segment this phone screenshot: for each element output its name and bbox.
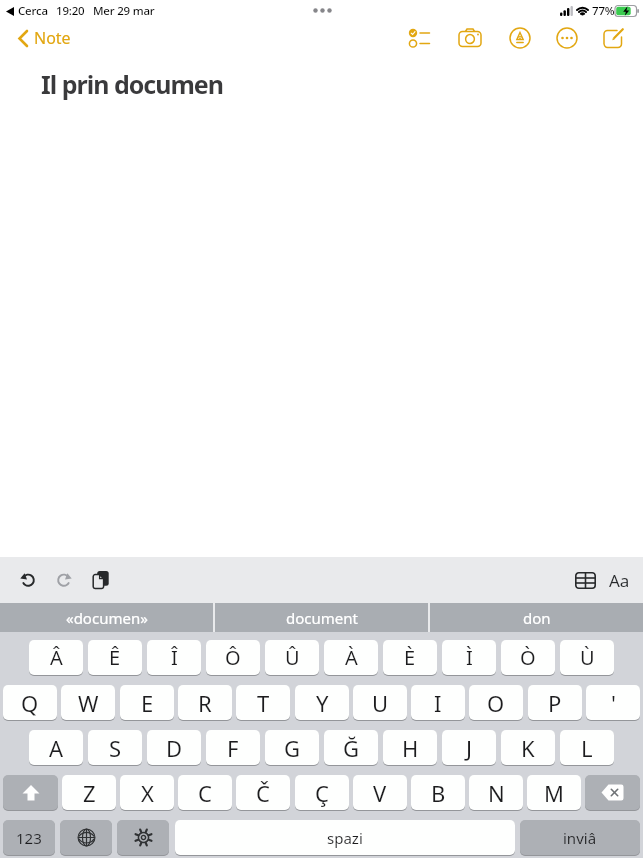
staticText: spazi	[327, 828, 363, 848]
staticText: È	[404, 644, 416, 671]
button[interactable]: Â	[29, 640, 83, 675]
staticText: Z	[83, 778, 96, 808]
button[interactable]: J	[442, 730, 496, 765]
button[interactable]: Ù	[560, 640, 614, 675]
staticText: R	[198, 688, 212, 718]
staticText: U	[372, 688, 389, 718]
button[interactable]	[575, 572, 596, 589]
button[interactable]: H	[383, 730, 437, 765]
staticText: document	[286, 608, 358, 628]
button[interactable]: K	[501, 730, 555, 765]
button[interactable]	[509, 27, 531, 49]
button[interactable]: G	[265, 730, 319, 765]
staticText: Y	[316, 688, 329, 718]
staticText: O	[487, 688, 505, 718]
button[interactable]: N	[469, 775, 523, 810]
button[interactable]: T	[236, 685, 290, 720]
staticText: Ò	[520, 644, 536, 671]
button[interactable]: Y	[295, 685, 349, 720]
button[interactable]: F	[206, 730, 260, 765]
staticText: 19:20	[56, 3, 85, 19]
button[interactable]: U	[353, 685, 407, 720]
button[interactable]: 123	[3, 820, 55, 855]
button[interactable]	[585, 775, 640, 810]
button[interactable]	[56, 572, 72, 588]
button[interactable]: Ò	[501, 640, 555, 675]
staticText: don	[523, 608, 551, 628]
staticText: A	[49, 733, 64, 763]
button[interactable]: «documen»	[0, 603, 213, 632]
button[interactable]: Q	[3, 685, 57, 720]
button[interactable]: I	[411, 685, 465, 720]
staticText: Č	[256, 778, 270, 808]
staticText: B	[431, 778, 446, 808]
button[interactable]: don	[430, 603, 643, 632]
staticText: D	[166, 733, 183, 763]
staticText: N	[488, 778, 505, 808]
button[interactable]: A	[29, 730, 83, 765]
staticText: Mer 29 mar	[93, 3, 155, 19]
staticText: Î	[171, 644, 178, 671]
staticText: Û	[285, 644, 300, 671]
button[interactable]: W	[61, 685, 115, 720]
staticText: C	[198, 778, 212, 808]
button[interactable]: S	[88, 730, 142, 765]
button[interactable]	[408, 27, 431, 49]
staticText: Note	[34, 27, 71, 49]
staticText: E	[141, 688, 154, 718]
button[interactable]: Ğ	[324, 730, 378, 765]
button[interactable]: À	[324, 640, 378, 675]
button[interactable]: B	[411, 775, 465, 810]
staticText: S	[109, 733, 122, 763]
button[interactable]: Ç	[295, 775, 349, 810]
staticText: I	[434, 688, 442, 718]
staticText: Q	[21, 688, 39, 718]
button[interactable]: Z	[62, 775, 116, 810]
staticText: 77%	[592, 3, 615, 19]
button[interactable]: '	[586, 685, 640, 720]
staticText: «documen»	[66, 608, 148, 628]
button[interactable]	[603, 27, 626, 49]
button[interactable]	[117, 820, 169, 855]
button[interactable]: Ô	[206, 640, 260, 675]
button[interactable]: È	[383, 640, 437, 675]
button[interactable]: E	[120, 685, 174, 720]
button[interactable]: Note	[18, 22, 71, 54]
staticText: M	[544, 778, 564, 808]
button[interactable]: document	[215, 603, 428, 632]
staticText: P	[548, 688, 562, 718]
staticText: Ù	[580, 644, 595, 671]
button[interactable]: P	[528, 685, 582, 720]
staticText: Ô	[225, 644, 241, 671]
button[interactable]: V	[353, 775, 407, 810]
staticText: 123	[16, 828, 42, 848]
button[interactable]	[3, 775, 58, 810]
button[interactable]	[556, 27, 578, 49]
staticText: Ê	[109, 644, 121, 671]
staticText: Aa	[609, 569, 630, 592]
button[interactable]: M	[527, 775, 581, 810]
staticText: V	[373, 778, 387, 808]
button[interactable]	[20, 572, 36, 588]
button[interactable]: O	[469, 685, 523, 720]
button[interactable]: D	[147, 730, 201, 765]
button[interactable]: spazi	[175, 820, 515, 855]
staticText: X	[141, 778, 154, 808]
button[interactable]	[92, 571, 109, 589]
button[interactable]	[458, 27, 482, 49]
staticText: inviâ	[563, 828, 597, 848]
button[interactable]: Ê	[88, 640, 142, 675]
button[interactable]: Č	[236, 775, 290, 810]
button[interactable]	[60, 820, 112, 855]
button[interactable]: Ì	[442, 640, 496, 675]
button[interactable]: L	[560, 730, 614, 765]
staticText: W	[78, 688, 99, 718]
button[interactable]: inviâ	[520, 820, 640, 855]
button[interactable]: R	[178, 685, 232, 720]
staticText: H	[402, 733, 419, 763]
button[interactable]: X	[120, 775, 174, 810]
button[interactable]: C	[178, 775, 232, 810]
staticText: Â	[50, 644, 63, 671]
button[interactable]: Î	[147, 640, 201, 675]
button[interactable]: Û	[265, 640, 319, 675]
